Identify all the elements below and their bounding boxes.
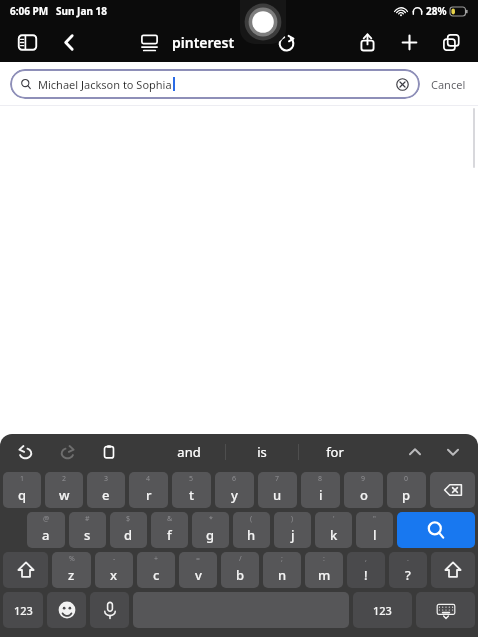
button[interactable]: 7 [258,472,297,508]
staticText: - [113,554,116,564]
button[interactable]: 1 [3,472,41,508]
staticText: . [407,554,409,564]
button[interactable]: @ [27,512,65,548]
button[interactable]: Undo [12,439,38,465]
button[interactable]: Shift [431,552,475,588]
staticText: c [153,566,160,584]
button[interactable]: 8 [301,472,340,508]
staticText: @ [43,514,50,524]
button[interactable]: and [153,434,225,470]
button[interactable]: 5 [172,472,211,508]
button[interactable]: Share [352,27,382,57]
button[interactable]: Backspace [430,472,475,508]
button[interactable]: 9 [344,472,383,508]
staticText: v [195,566,202,584]
staticText: b [236,566,245,584]
staticText: $ [126,514,131,524]
staticText: j [291,526,295,544]
staticText: u [273,486,282,504]
staticText: & [167,514,173,524]
button[interactable]: & [151,512,188,548]
button[interactable]: 0 [387,472,426,508]
staticText: ? [405,566,411,584]
staticText: pinterest [172,33,235,52]
button[interactable]: / [221,552,259,588]
button[interactable]: = [179,552,217,588]
button[interactable]: Next [440,439,466,465]
button[interactable]: Back [54,27,84,57]
button[interactable]: " [356,512,393,548]
staticText: 8 [318,474,323,484]
button[interactable]: $ [110,512,147,548]
staticText: and [177,443,201,461]
staticText: Sun Jan 18 [56,4,107,18]
staticText: 28% [426,4,447,18]
button[interactable]: ' [315,512,352,548]
staticText: 2 [62,474,67,484]
staticText: f [167,526,172,544]
staticText: t [189,486,194,504]
button[interactable]: Sidebar [12,27,42,57]
staticText: ; [281,554,283,564]
staticText: ! [364,566,368,584]
staticText: for [326,443,344,461]
staticText: 1 [20,474,25,484]
button[interactable]: is [226,434,298,470]
button[interactable]: ) [274,512,311,548]
staticText: ( [250,514,253,524]
staticText: l [373,526,377,544]
staticText: ) [291,514,294,524]
staticText: ' [333,514,335,524]
staticText: 3 [104,474,109,484]
button[interactable]: Voice input [90,592,129,628]
button[interactable]: , [347,552,385,588]
staticText: d [124,526,133,544]
staticText: i [319,486,323,504]
button[interactable]: 123 [353,592,412,628]
staticText: , [365,554,367,564]
button[interactable]: Paste [96,439,122,465]
button[interactable]: . [389,552,427,588]
button[interactable]: Redo [54,439,80,465]
button[interactable]: New tab [394,27,424,57]
button[interactable]: ; [263,552,301,588]
staticText: 7 [275,474,280,484]
staticText: * [209,514,213,524]
button[interactable]: - [95,552,133,588]
button[interactable]: 6 [215,472,254,508]
button[interactable]: Search [397,512,475,548]
button[interactable]: ( [233,512,270,548]
button[interactable]: for [299,434,371,470]
button[interactable]: Hide keyboard [416,592,475,628]
staticText: x [110,566,118,584]
button[interactable]: Tabs [436,27,466,57]
staticText: w [59,486,70,504]
button[interactable]: : [305,552,343,588]
button[interactable]: Cancel [429,73,468,96]
button[interactable]: * [192,512,229,548]
staticText: z [68,566,75,584]
staticText: Cancel [431,77,466,92]
staticText: " [373,514,376,524]
button[interactable]: + [137,552,175,588]
button[interactable]: pinterest [170,33,237,52]
staticText: 6 [232,474,237,484]
button[interactable]: 3 [87,472,125,508]
staticText: + [154,554,159,564]
button[interactable]: 2 [45,472,83,508]
button[interactable]: Emoji [47,592,86,628]
button[interactable]: Michael Jackson to Sophia [10,69,420,99]
button[interactable]: 4 [129,472,168,508]
button[interactable]: Clear [394,76,410,92]
button[interactable]: 123 [3,592,43,628]
staticText: m [318,566,331,584]
button[interactable]: # [69,512,106,548]
staticText: o [360,486,368,504]
button[interactable]: Shift [3,552,48,588]
button[interactable]: Reload [271,27,301,57]
button[interactable]: Reader view [134,27,164,57]
button[interactable]: % [52,552,91,588]
staticText: 123 [373,603,392,618]
button[interactable]: Previous [402,439,428,465]
